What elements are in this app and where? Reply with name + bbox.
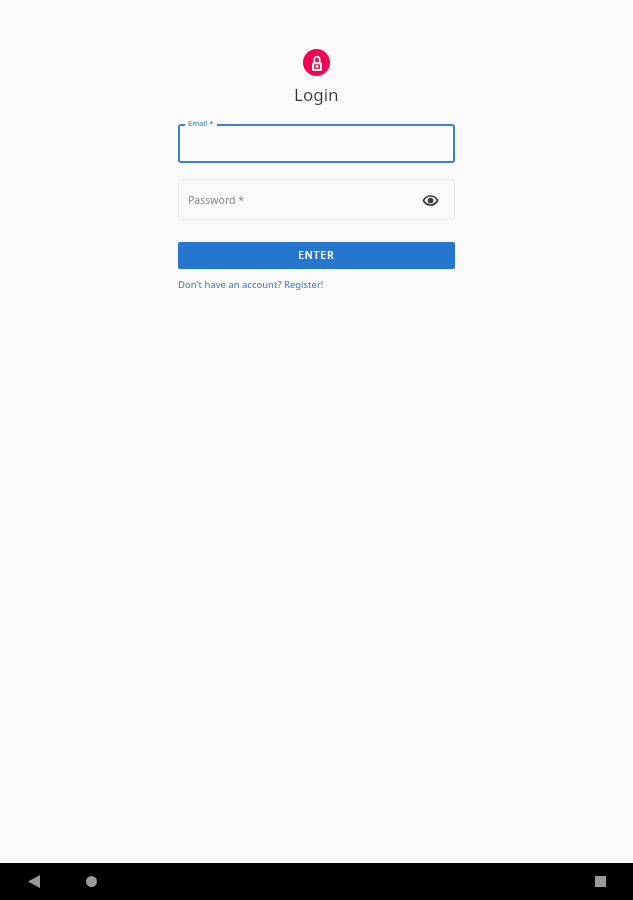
button[interactable]: Recent apps	[576, 863, 624, 900]
button[interactable]: Back	[10, 863, 58, 900]
other: Lock	[303, 49, 330, 76]
staticText: Login	[294, 83, 339, 106]
button[interactable]: Home	[67, 863, 115, 900]
button[interactable]: Email *	[178, 124, 455, 163]
button[interactable]: Show password	[419, 189, 441, 211]
staticText: ENTER	[298, 248, 335, 262]
staticText: Password *	[188, 193, 245, 207]
staticText: Email *	[188, 118, 214, 128]
staticText: Don't have an account? Register!	[178, 278, 324, 291]
button[interactable]: Password *	[178, 179, 455, 220]
button[interactable]: ENTER	[178, 242, 455, 269]
button[interactable]: Don't have an account? Register!	[178, 278, 324, 291]
